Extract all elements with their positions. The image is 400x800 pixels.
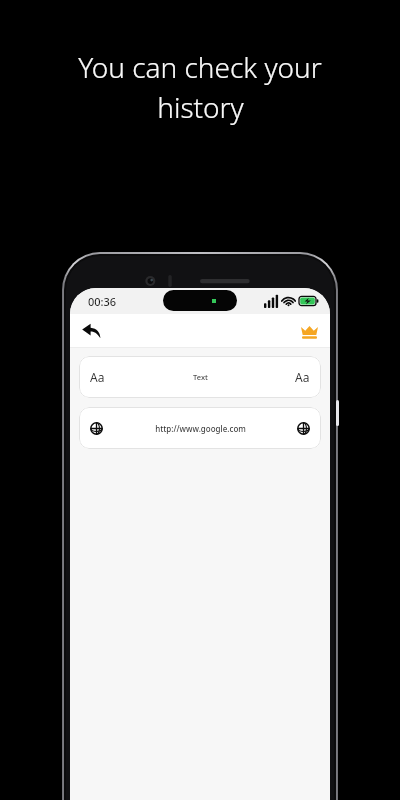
staticText: 00:36 <box>88 294 117 309</box>
staticText: You can check your <box>78 48 322 86</box>
button[interactable]: Back <box>76 316 106 346</box>
staticText: Text <box>193 372 208 382</box>
staticText: http://www.google.com <box>155 423 246 434</box>
button[interactable]: http://www.google.com <box>79 407 321 449</box>
button[interactable]: Premium <box>294 316 324 346</box>
staticText: Aa <box>295 369 310 385</box>
button[interactable]: Aa <box>79 356 321 398</box>
staticText: Aa <box>90 369 105 385</box>
staticText: history <box>157 88 244 126</box>
